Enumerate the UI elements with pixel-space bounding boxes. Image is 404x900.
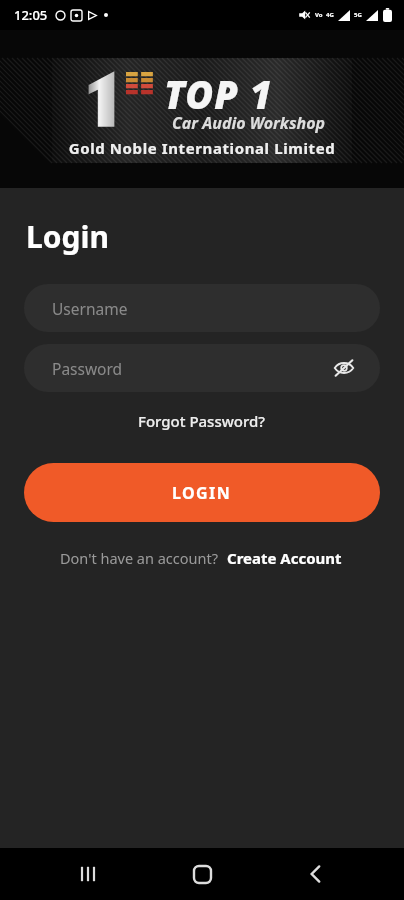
button[interactable]: Password [24, 344, 380, 392]
staticText: Gold Noble International Limited [52, 138, 352, 158]
staticText: Login [26, 216, 109, 257]
staticText: Username [52, 298, 128, 319]
button[interactable]: Forgot Password? [128, 406, 276, 436]
staticText: 5G [354, 11, 362, 19]
button[interactable]: Recent apps [62, 848, 114, 900]
staticText: Don't have an account? [60, 548, 218, 568]
button[interactable]: Create Account [225, 545, 344, 571]
button[interactable]: LOGIN [24, 463, 380, 522]
button[interactable]: Username [24, 284, 380, 332]
staticText: Vo [315, 11, 323, 19]
button[interactable]: Show password [330, 354, 358, 382]
staticText: Password [52, 358, 123, 379]
button[interactable]: Back [290, 848, 342, 900]
button[interactable]: Home [176, 848, 228, 900]
staticText: 12:05 [14, 6, 48, 24]
staticText: TOP 1 [164, 68, 273, 120]
staticText: Car Audio Workshop [172, 112, 326, 134]
staticText: 4G [326, 11, 334, 19]
staticText: LOGIN [172, 482, 232, 504]
